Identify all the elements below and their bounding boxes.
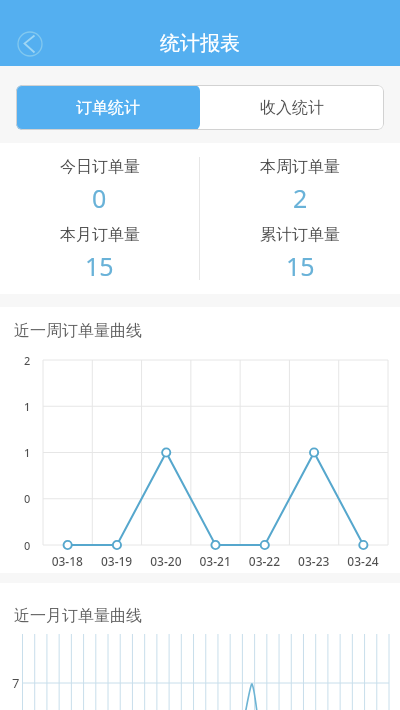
- button[interactable]: Back: [8, 22, 52, 66]
- staticText: 收入统计: [260, 98, 324, 118]
- staticText: 统计报表: [160, 31, 240, 56]
- staticText: 本月订单量: [60, 225, 140, 245]
- staticText: 15: [85, 249, 114, 283]
- staticText: 累计订单量: [260, 225, 340, 245]
- staticText: 今日订单量: [60, 157, 140, 177]
- staticText: 近一月订单量曲线: [14, 606, 142, 626]
- staticText: 本周订单量: [260, 157, 340, 177]
- staticText: 近一周订单量曲线: [14, 321, 142, 341]
- button[interactable]: 订单统计: [16, 85, 200, 130]
- staticText: 0: [92, 181, 107, 215]
- button[interactable]: 收入统计: [200, 85, 384, 130]
- staticText: 订单统计: [76, 98, 140, 118]
- staticText: 2: [293, 181, 308, 215]
- staticText: 15: [286, 249, 315, 283]
